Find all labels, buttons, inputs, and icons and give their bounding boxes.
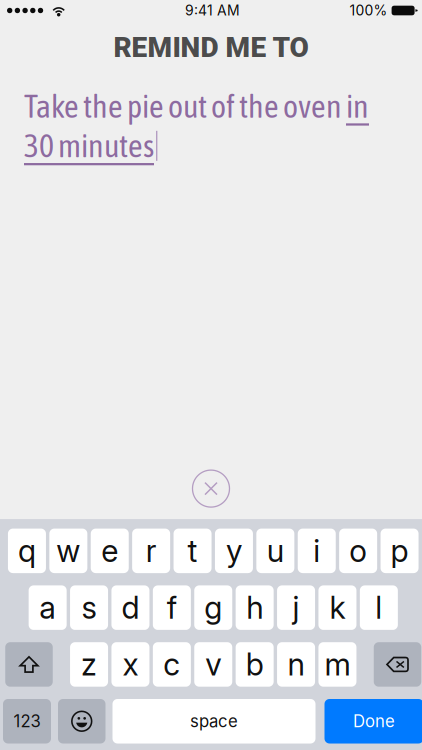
staticText: v bbox=[205, 646, 221, 683]
staticText: k bbox=[329, 589, 345, 626]
staticText: l bbox=[375, 589, 382, 626]
staticText: Done bbox=[353, 711, 395, 731]
staticText: space bbox=[190, 711, 238, 731]
button[interactable]: space bbox=[112, 699, 315, 743]
button[interactable]: a bbox=[29, 585, 67, 630]
staticText: z bbox=[81, 646, 97, 683]
button[interactable]: t bbox=[173, 529, 211, 573]
staticText: r bbox=[146, 532, 157, 569]
button[interactable]: j bbox=[277, 585, 315, 630]
button[interactable]: h bbox=[236, 585, 274, 630]
button[interactable]: y bbox=[215, 529, 253, 573]
staticText: 100% bbox=[350, 2, 388, 19]
button[interactable]: Shift bbox=[5, 642, 53, 687]
button[interactable]: Done bbox=[324, 699, 422, 743]
staticText: 30 minutes bbox=[24, 127, 154, 164]
button[interactable]: 123 bbox=[3, 699, 51, 743]
staticText: Take the pie out of the oven in bbox=[24, 88, 369, 124]
staticText: REMIND ME TO bbox=[113, 31, 308, 64]
button[interactable]: w bbox=[49, 529, 87, 573]
staticText: g bbox=[204, 589, 222, 626]
staticText: c bbox=[163, 646, 180, 683]
button[interactable]: x bbox=[111, 642, 149, 687]
button[interactable]: m bbox=[318, 642, 356, 687]
button[interactable]: e bbox=[91, 529, 129, 573]
button[interactable]: o bbox=[339, 529, 377, 573]
button[interactable]: i bbox=[298, 529, 336, 573]
staticText: s bbox=[82, 589, 97, 626]
button[interactable]: k bbox=[318, 585, 356, 630]
button[interactable]: d bbox=[111, 585, 149, 630]
staticText: j bbox=[293, 589, 300, 626]
staticText: 123 bbox=[13, 711, 40, 731]
staticText: h bbox=[246, 589, 263, 626]
button[interactable]: s bbox=[70, 585, 108, 630]
button[interactable]: Delete bbox=[374, 642, 421, 687]
staticText: t bbox=[187, 532, 197, 569]
staticText: x bbox=[122, 646, 138, 683]
button[interactable]: n bbox=[277, 642, 315, 687]
button[interactable]: g bbox=[194, 585, 232, 630]
staticText: o bbox=[349, 532, 367, 569]
staticText: y bbox=[226, 532, 242, 569]
staticText: e bbox=[101, 532, 118, 569]
staticText: a bbox=[39, 589, 56, 626]
staticText: p bbox=[390, 532, 408, 569]
staticText: n bbox=[288, 646, 305, 683]
button[interactable]: Emoji keyboard bbox=[58, 699, 105, 743]
button[interactable]: p bbox=[380, 529, 418, 573]
button[interactable]: Clear reminder bbox=[189, 467, 233, 511]
button[interactable]: b bbox=[236, 642, 274, 687]
button[interactable]: v bbox=[194, 642, 232, 687]
staticText: f bbox=[167, 589, 177, 626]
staticText: w bbox=[56, 532, 80, 569]
staticText: m bbox=[324, 646, 350, 683]
staticText: i bbox=[313, 532, 320, 569]
button[interactable]: r bbox=[132, 529, 170, 573]
button[interactable]: l bbox=[360, 585, 398, 630]
button[interactable]: z bbox=[70, 642, 108, 687]
staticText: u bbox=[267, 532, 284, 569]
button[interactable]: c bbox=[153, 642, 191, 687]
staticText: d bbox=[121, 589, 139, 626]
staticText: b bbox=[246, 646, 264, 683]
staticText: q bbox=[18, 532, 36, 569]
staticText: 9:41 AM bbox=[185, 2, 240, 19]
button[interactable]: f bbox=[153, 585, 191, 630]
button[interactable]: u bbox=[256, 529, 294, 573]
button[interactable]: q bbox=[8, 529, 46, 573]
